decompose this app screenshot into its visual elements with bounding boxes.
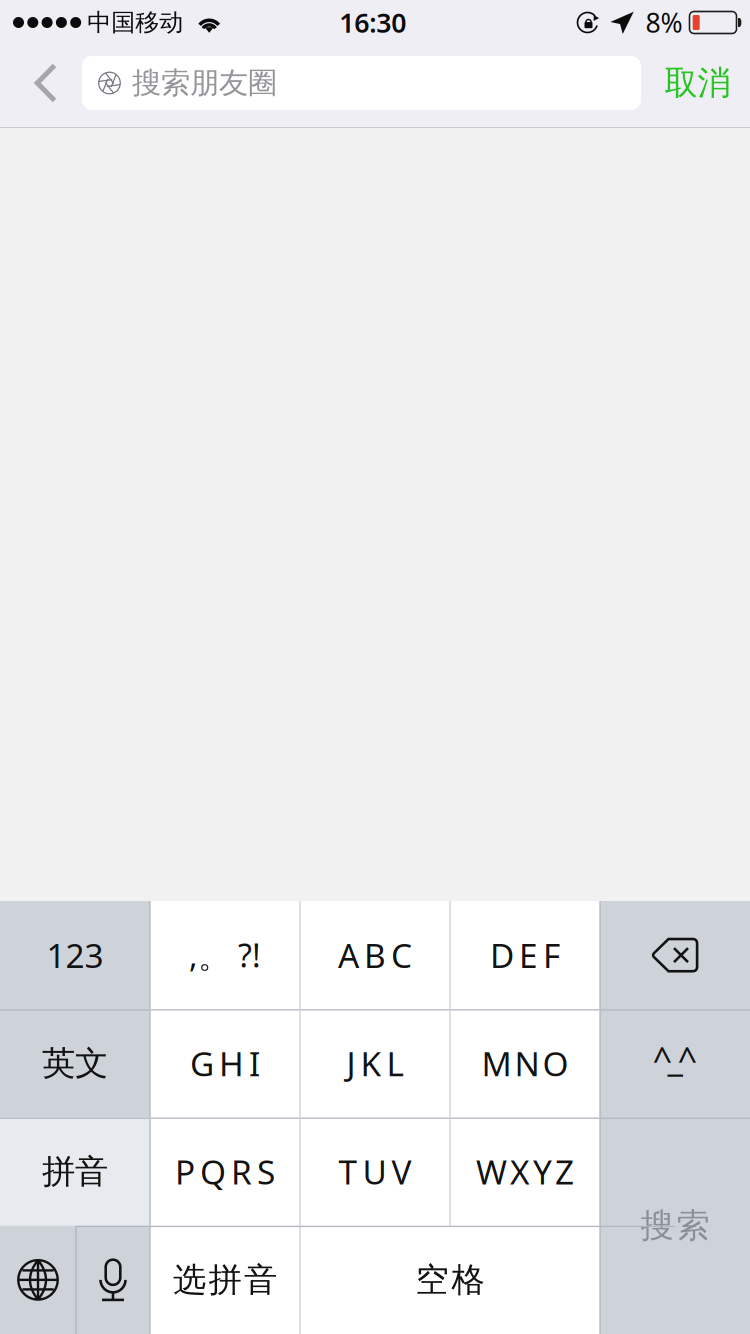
button[interactable]: TUV: [300, 1117, 450, 1226]
staticText: 搜索: [640, 1205, 709, 1246]
button[interactable]: DEF: [450, 901, 600, 1009]
staticText: ^_^: [652, 1035, 697, 1081]
staticText: ,。 ?!: [189, 934, 261, 976]
staticText: 8%: [645, 5, 682, 40]
staticText: DEF: [490, 933, 560, 977]
staticText: 123: [46, 933, 103, 977]
button[interactable]: JKL: [300, 1009, 450, 1117]
staticText: 取消: [664, 62, 730, 103]
button[interactable]: [600, 901, 750, 1009]
button[interactable]: Back: [10, 50, 82, 116]
button[interactable]: 选拼音: [150, 1226, 300, 1334]
staticText: GHI: [190, 1041, 260, 1085]
staticText: ABC: [338, 933, 412, 977]
staticText: 拼音: [42, 1151, 108, 1192]
staticText: WXYZ: [476, 1149, 574, 1194]
button[interactable]: [0, 1226, 76, 1334]
button[interactable]: 搜索: [600, 1117, 750, 1334]
button[interactable]: WXYZ: [450, 1117, 600, 1226]
staticText: JKL: [346, 1041, 403, 1085]
button[interactable]: 英文: [0, 1009, 150, 1117]
button[interactable]: ,。 ?!: [150, 901, 300, 1009]
staticText: TUV: [338, 1149, 411, 1194]
staticText: 16:30: [339, 5, 406, 40]
staticText: PQRS: [175, 1149, 275, 1194]
button[interactable]: 取消: [651, 49, 744, 117]
button[interactable]: [76, 1226, 150, 1334]
staticText: 空格: [415, 1259, 484, 1300]
button[interactable]: 空格: [300, 1226, 600, 1334]
staticText: 英文: [42, 1043, 108, 1084]
button[interactable]: GHI: [150, 1009, 300, 1117]
staticText: 搜索朋友圈: [132, 65, 277, 101]
button[interactable]: PQRS: [150, 1117, 300, 1226]
button[interactable]: ^_^: [600, 1009, 750, 1117]
button[interactable]: 123: [0, 901, 150, 1009]
button[interactable]: 搜索朋友圈: [82, 56, 641, 110]
button[interactable]: MNO: [450, 1009, 600, 1117]
staticText: 中国移动: [87, 8, 183, 37]
button[interactable]: 拼音: [0, 1117, 150, 1226]
staticText: 选拼音: [173, 1259, 277, 1300]
staticText: MNO: [481, 1041, 568, 1085]
button[interactable]: ABC: [300, 901, 450, 1009]
